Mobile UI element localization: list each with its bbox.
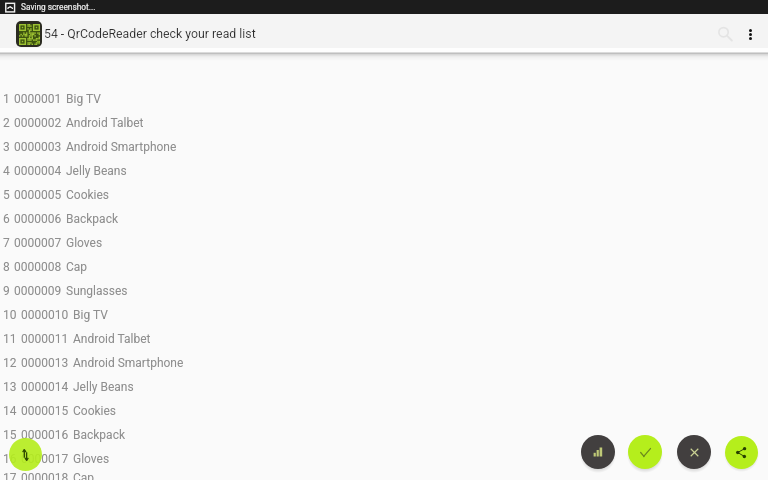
staticText: 14 <box>3 404 17 418</box>
staticText: Android Talbet <box>66 116 144 130</box>
staticText: 0000002 <box>14 116 62 130</box>
staticText: Cookies <box>66 188 110 202</box>
staticText: 2 <box>3 116 10 130</box>
button[interactable]: Statistics <box>581 435 615 469</box>
button[interactable]: 10 <box>0 303 768 327</box>
staticText: 11 <box>3 332 17 346</box>
staticText: 7 <box>3 236 10 250</box>
button[interactable]: Sort <box>9 438 42 471</box>
button[interactable]: 17 <box>0 471 768 480</box>
staticText: 0000013 <box>21 356 69 370</box>
button[interactable]: App icon <box>16 21 42 47</box>
staticText: 6 <box>3 212 10 226</box>
staticText: Android Smartphone <box>66 140 177 154</box>
staticText: 16 <box>3 452 17 466</box>
staticText: 9 <box>3 284 10 298</box>
staticText: 0000015 <box>21 404 69 418</box>
staticText: Jelly Beans <box>73 380 134 394</box>
staticText: 8 <box>3 260 10 274</box>
button[interactable]: 8 <box>0 255 768 279</box>
button[interactable]: Share <box>725 436 758 469</box>
staticText: 0000004 <box>14 164 62 178</box>
button[interactable]: More options <box>736 18 768 50</box>
staticText: Sunglasses <box>66 284 128 298</box>
staticText: Cap <box>73 471 95 480</box>
button[interactable]: 5 <box>0 183 768 207</box>
staticText: 10 <box>3 308 17 322</box>
staticText: Saving screenshot... <box>21 2 96 12</box>
staticText: 0000009 <box>14 284 62 298</box>
staticText: Big TV <box>66 92 101 106</box>
staticText: 54 - QrCodeReader check your read list <box>44 27 256 41</box>
staticText: 17 <box>3 471 17 480</box>
staticText: 0000016 <box>21 428 69 442</box>
button[interactable]: Cancel <box>677 435 711 469</box>
button[interactable]: 3 <box>0 135 768 159</box>
staticText: Gloves <box>73 452 110 466</box>
staticText: Big TV <box>73 308 108 322</box>
button[interactable]: 4 <box>0 159 768 183</box>
staticText: 0000018 <box>21 471 69 480</box>
staticText: Cookies <box>73 404 117 418</box>
staticText: Gloves <box>66 236 103 250</box>
staticText: 0000011 <box>21 332 69 346</box>
staticText: 1 <box>3 92 10 106</box>
staticText: 15 <box>3 428 17 442</box>
staticText: 0000008 <box>14 260 62 274</box>
staticText: Android Smartphone <box>73 356 184 370</box>
button[interactable]: 9 <box>0 279 768 303</box>
staticText: 4 <box>3 164 10 178</box>
staticText: 0000010 <box>21 308 69 322</box>
staticText: 0000017 <box>21 452 69 466</box>
button[interactable]: 1 <box>0 87 768 111</box>
button[interactable]: 6 <box>0 207 768 231</box>
staticText: 0000006 <box>14 212 62 226</box>
button[interactable]: Search <box>702 17 736 51</box>
staticText: 3 <box>3 140 10 154</box>
button[interactable]: 11 <box>0 327 768 351</box>
button[interactable]: 12 <box>0 351 768 375</box>
staticText: Backpack <box>73 428 125 442</box>
staticText: 0000001 <box>14 92 62 106</box>
staticText: 13 <box>3 380 17 394</box>
button[interactable]: 14 <box>0 399 768 423</box>
staticText: Backpack <box>66 212 118 226</box>
button[interactable]: 16 <box>0 447 768 471</box>
staticText: Jelly Beans <box>66 164 127 178</box>
staticText: 12 <box>3 356 17 370</box>
button[interactable]: 13 <box>0 375 768 399</box>
staticText: Cap <box>66 260 88 274</box>
staticText: 0000014 <box>21 380 69 394</box>
staticText: 5 <box>3 188 10 202</box>
staticText: 0000003 <box>14 140 62 154</box>
staticText: 0000007 <box>14 236 62 250</box>
button[interactable]: 7 <box>0 231 768 255</box>
staticText: 0000005 <box>14 188 62 202</box>
button[interactable]: 15 <box>0 423 768 447</box>
button[interactable]: 2 <box>0 111 768 135</box>
button[interactable]: Confirm <box>628 435 662 469</box>
staticText: Android Talbet <box>73 332 151 346</box>
